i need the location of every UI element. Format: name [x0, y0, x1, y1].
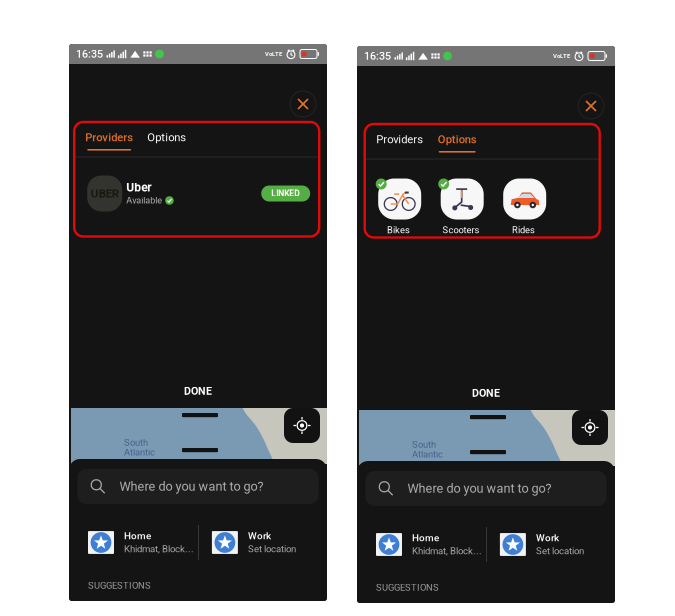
staticText: LINKED [271, 188, 300, 198]
staticText: DONE [184, 385, 212, 397]
button[interactable]: Home [376, 533, 482, 556]
button[interactable]: DONE [69, 374, 327, 408]
staticText: Khidmat, Block... [412, 545, 482, 557]
staticText: VoLTE [265, 51, 282, 57]
staticText: Set location [536, 545, 584, 557]
button[interactable]: Scooters [438, 178, 484, 234]
staticText: DONE [472, 387, 500, 399]
staticText: UBER [91, 187, 119, 200]
button[interactable]: Options [434, 134, 481, 159]
staticText: Bikes [387, 224, 410, 235]
staticText: Where do you want to go? [119, 479, 263, 494]
staticText: Options [438, 133, 477, 146]
button[interactable]: Providers [82, 132, 136, 157]
button[interactable]: Locate me [572, 410, 608, 445]
staticText: Providers [85, 131, 133, 144]
staticText: SUGGESTIONS [88, 580, 151, 591]
staticText: Home [124, 530, 151, 542]
button[interactable]: LINKED [261, 185, 310, 201]
staticText: Khidmat, Block... [124, 543, 194, 555]
staticText: South [412, 439, 436, 450]
staticText: Scooters [442, 224, 479, 235]
staticText: Atlantic [412, 449, 443, 460]
staticText: Available [126, 195, 162, 206]
staticText: Rides [512, 224, 535, 235]
staticText: Work [536, 532, 559, 544]
staticText: Home [412, 532, 439, 544]
button[interactable]: Work [500, 533, 584, 556]
button[interactable]: Close [290, 91, 316, 117]
staticText: VoLTE [553, 53, 570, 59]
button[interactable]: Bikes [376, 178, 421, 234]
staticText: South [124, 437, 148, 448]
button[interactable]: Work [212, 531, 296, 554]
button[interactable]: Where do you want to go? [365, 471, 606, 506]
staticText: Uber [126, 180, 151, 195]
button[interactable]: Options [143, 132, 190, 157]
button[interactable]: Where do you want to go? [77, 469, 318, 504]
staticText: Set location [248, 543, 296, 555]
button[interactable]: DONE [357, 376, 615, 410]
button[interactable]: Providers [373, 134, 427, 159]
staticText: Work [248, 530, 271, 542]
button[interactable]: Close [578, 93, 604, 119]
staticText: Providers [376, 133, 423, 146]
button[interactable]: Home [88, 531, 194, 554]
staticText: SUGGESTIONS [376, 582, 439, 593]
staticText: 16:35 [364, 50, 391, 62]
staticText: 16:35 [76, 48, 103, 60]
staticText: Options [147, 131, 186, 144]
staticText: Where do you want to go? [407, 481, 551, 496]
staticText: Atlantic [124, 447, 155, 458]
button[interactable]: Rides [501, 178, 546, 234]
button[interactable]: Locate me [284, 408, 320, 443]
